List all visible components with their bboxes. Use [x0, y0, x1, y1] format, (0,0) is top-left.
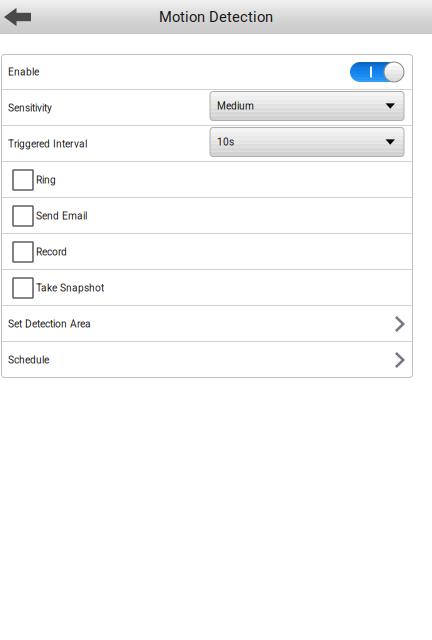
button[interactable]: Ring [2, 162, 412, 198]
staticText: 10s [217, 136, 234, 148]
button[interactable]: Enable motion detection [350, 62, 404, 82]
button[interactable]: Send Email [2, 198, 412, 234]
button[interactable]: Set Detection Area [2, 306, 412, 342]
button[interactable]: Take Snapshot [2, 270, 412, 306]
staticText: Enable [8, 66, 39, 78]
staticText: Schedule [8, 354, 49, 366]
staticText: Sensitivity [8, 102, 52, 114]
button[interactable]: 10s [210, 127, 404, 160]
button[interactable]: Medium [210, 91, 404, 124]
button[interactable]: Schedule [2, 342, 412, 378]
staticText: Ring [36, 174, 56, 186]
staticText: Send Email [36, 210, 87, 222]
staticText: Medium [217, 100, 254, 112]
button[interactable]: Record [2, 234, 412, 270]
staticText: Record [36, 246, 67, 258]
button[interactable]: Back [0, 0, 48, 34]
staticText: Motion Detection [159, 8, 273, 26]
staticText: Triggered Interval [8, 138, 87, 150]
staticText: Take Snapshot [36, 282, 104, 294]
staticText: Set Detection Area [8, 318, 91, 330]
